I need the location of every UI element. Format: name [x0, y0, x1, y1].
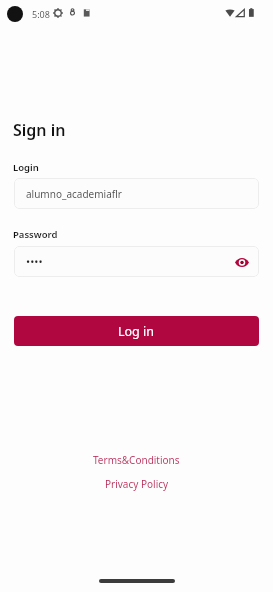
button[interactable]: ••••: [14, 246, 259, 277]
staticText: ••••: [26, 254, 43, 269]
button[interactable]: Privacy Policy: [97, 474, 177, 494]
staticText: Login: [13, 161, 39, 174]
staticText: Privacy Policy: [105, 477, 169, 491]
button[interactable]: Log in: [14, 316, 259, 346]
button[interactable]: Terms&Conditions: [85, 450, 188, 470]
button[interactable]: alumno_academiaflr: [14, 178, 259, 209]
staticText: Password: [13, 228, 58, 241]
staticText: alumno_academiaflr: [26, 187, 122, 201]
button[interactable]: Show password: [232, 252, 252, 272]
staticText: Sign in: [13, 119, 66, 141]
staticText: Log in: [118, 323, 155, 340]
staticText: 5:08: [32, 8, 50, 20]
staticText: Terms&Conditions: [93, 453, 180, 467]
